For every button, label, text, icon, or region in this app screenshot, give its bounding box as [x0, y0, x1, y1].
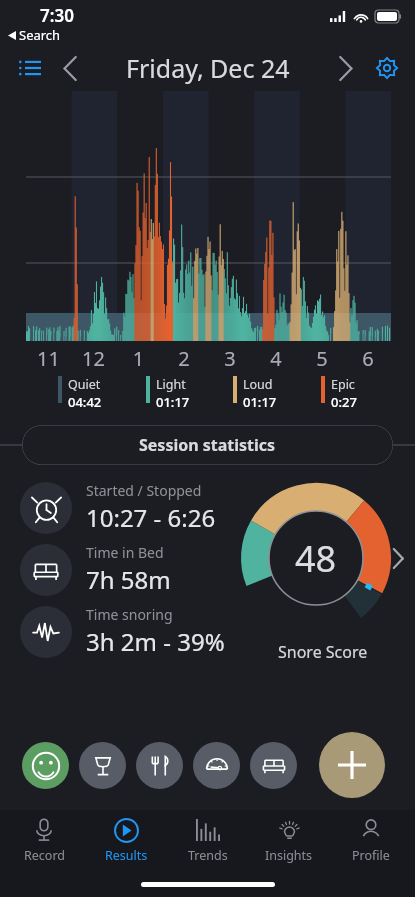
staticText: 2: [161, 345, 207, 372]
button[interactable]: Stress: [193, 742, 240, 789]
button[interactable]: Alcohol: [79, 742, 126, 789]
staticText: 01:17: [156, 393, 190, 411]
button[interactable]: Record: [6, 816, 82, 864]
button[interactable]: Meal: [136, 742, 183, 789]
button[interactable]: 48: [241, 483, 391, 633]
staticText: 7h 58m: [86, 563, 171, 596]
button[interactable]: Next day: [327, 50, 363, 86]
staticText: 48: [295, 534, 337, 583]
staticText: Started / Stopped: [86, 481, 202, 500]
staticText: Quiet: [68, 376, 101, 393]
staticText: Search: [19, 26, 61, 44]
button[interactable]: Mood: [22, 742, 69, 789]
button[interactable]: Started / Stopped: [20, 481, 216, 534]
staticText: 4: [253, 345, 299, 372]
staticText: 3h 2m - 39%: [86, 625, 225, 658]
button[interactable]: More details: [383, 543, 413, 573]
button[interactable]: Settings: [369, 50, 405, 86]
staticText: 10:27 - 6:26: [86, 501, 216, 534]
staticText: 1: [116, 345, 161, 372]
button[interactable]: Insights: [251, 816, 327, 864]
staticText: Trends: [188, 847, 228, 864]
staticText: 12: [71, 345, 116, 372]
button[interactable]: Previous day: [52, 50, 88, 86]
staticText: Light: [156, 376, 186, 393]
staticText: 3: [207, 345, 253, 372]
staticText: 0:27: [331, 393, 357, 411]
button[interactable]: Time in Bed: [20, 543, 171, 596]
staticText: Time snoring: [86, 605, 173, 624]
staticText: Time in Bed: [86, 543, 164, 562]
staticText: Epic: [331, 376, 355, 393]
staticText: Profile: [352, 847, 390, 864]
button[interactable]: List: [12, 50, 48, 86]
staticText: 01:17: [243, 393, 277, 411]
button[interactable]: Profile: [333, 816, 409, 864]
staticText: Loud: [243, 376, 273, 393]
staticText: 04:42: [68, 393, 102, 411]
staticText: 5: [299, 345, 345, 372]
staticText: Insights: [265, 847, 313, 864]
staticText: Results: [105, 847, 148, 864]
button[interactable]: Bed: [250, 742, 297, 789]
button[interactable]: Time snoring: [20, 605, 225, 658]
staticText: Record: [24, 847, 65, 864]
button[interactable]: Trends: [170, 816, 246, 864]
staticText: 6: [345, 345, 391, 372]
staticText: Session statistics: [139, 434, 276, 456]
staticText: 7:30: [40, 4, 74, 27]
staticText: 11: [26, 345, 71, 372]
staticText: Friday, Dec 24: [126, 51, 290, 85]
button[interactable]: Session statistics: [22, 425, 393, 465]
staticText: Snore Score: [278, 641, 368, 663]
button[interactable]: Results: [88, 816, 164, 864]
button[interactable]: Add tag: [319, 732, 385, 798]
